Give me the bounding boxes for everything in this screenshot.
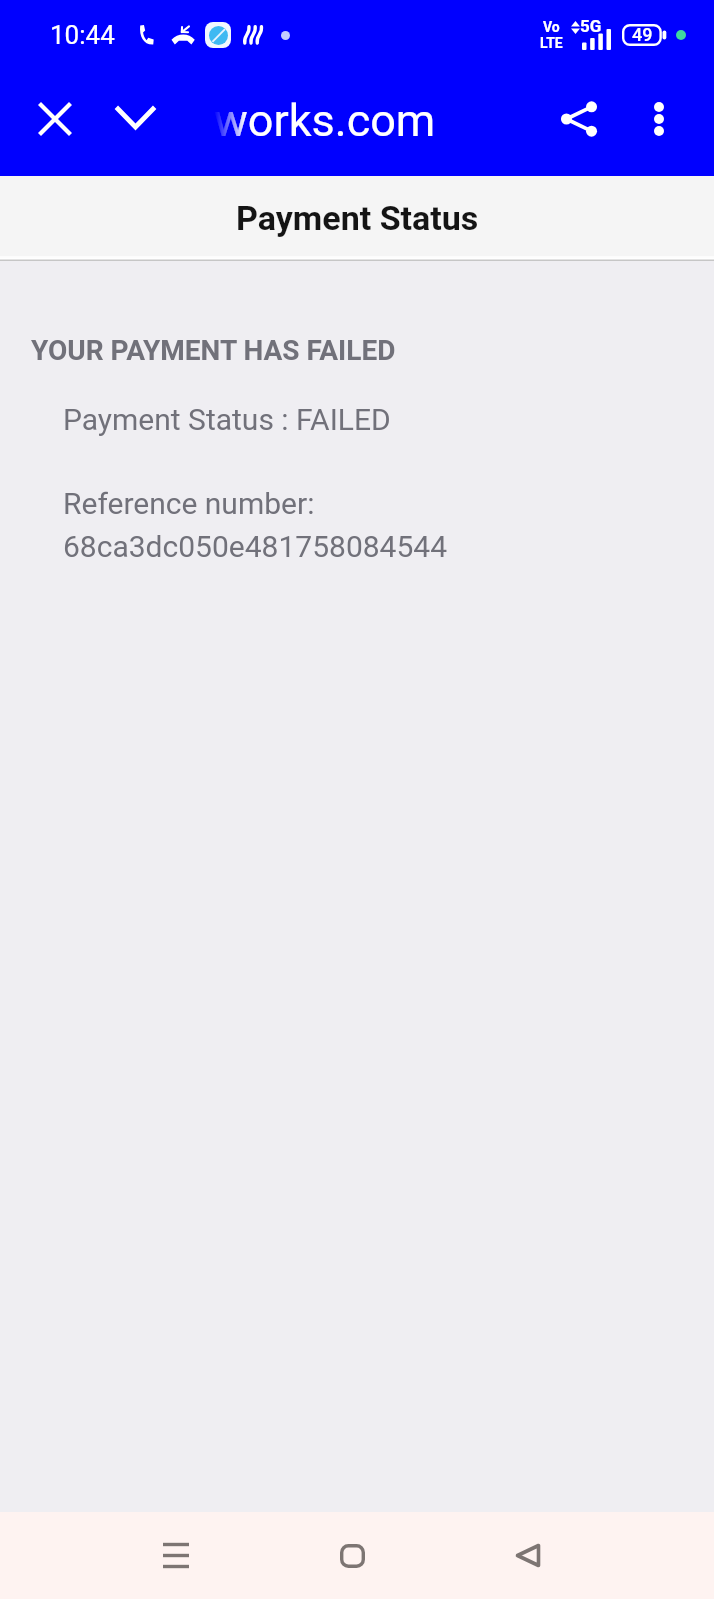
button[interactable]: More options xyxy=(617,77,701,161)
button[interactable]: Recent apps xyxy=(132,1512,220,1599)
staticText: Payment Status xyxy=(236,198,479,238)
staticText: 10:44 xyxy=(50,20,115,50)
button[interactable]: Close xyxy=(13,77,97,161)
staticText: YOUR PAYMENT HAS FAILED xyxy=(31,334,396,367)
staticText: Reference number: 68ca3dc050e48175808454… xyxy=(63,486,448,564)
button[interactable]: Share xyxy=(537,77,621,161)
staticText: LTE xyxy=(540,35,563,51)
staticText: Vo xyxy=(543,19,560,35)
button[interactable]: Expand address bar xyxy=(93,76,177,160)
button[interactable]: works.com xyxy=(170,76,520,162)
staticText: Payment Status : FAILED xyxy=(63,402,391,437)
staticText: 49 xyxy=(632,24,653,45)
staticText: works.com xyxy=(214,94,436,147)
button[interactable]: Back xyxy=(484,1512,572,1599)
staticText: 5G xyxy=(580,16,602,36)
button[interactable]: Home xyxy=(308,1512,396,1599)
